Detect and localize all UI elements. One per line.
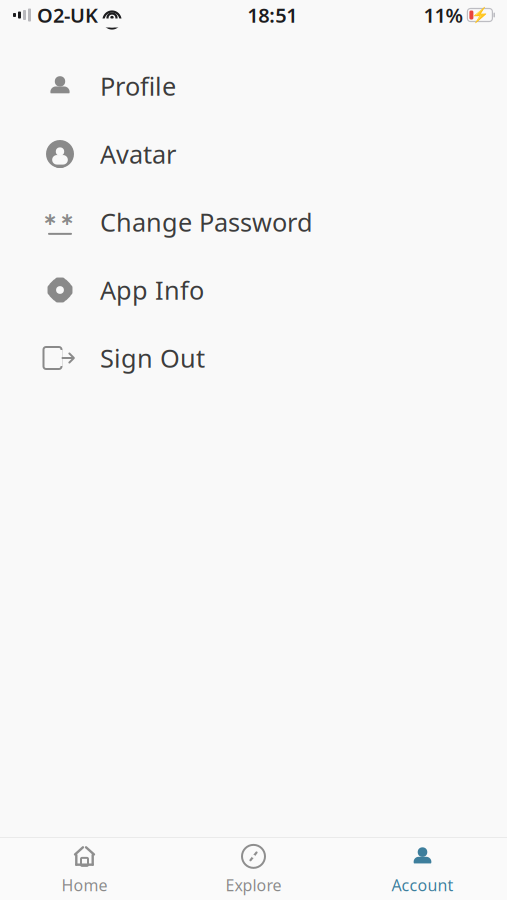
staticText: Avatar: [100, 137, 176, 171]
staticText: O2-UK: [37, 2, 98, 28]
staticText: Sign Out: [100, 341, 205, 375]
staticText: ∗: [43, 209, 58, 229]
button[interactable]: Explore: [169, 838, 338, 900]
button[interactable]: Home: [0, 838, 169, 900]
staticText: Account: [391, 874, 453, 896]
button[interactable]: Avatar: [0, 120, 507, 188]
staticText: 18:51: [247, 2, 297, 28]
staticText: App Info: [100, 273, 204, 307]
staticText: Change Password: [100, 205, 313, 239]
staticText: ⚡: [471, 7, 489, 23]
button[interactable]: ∗: [0, 188, 507, 256]
button[interactable]: App Info: [0, 256, 507, 324]
button[interactable]: Profile: [0, 52, 507, 120]
staticText: Profile: [100, 69, 176, 103]
staticText: Explore: [225, 874, 281, 896]
staticText: Home: [61, 874, 107, 896]
staticText: ∗: [60, 209, 75, 229]
button[interactable]: Sign Out: [0, 324, 507, 392]
staticText: 11%: [423, 2, 463, 28]
button[interactable]: Account: [338, 838, 507, 900]
